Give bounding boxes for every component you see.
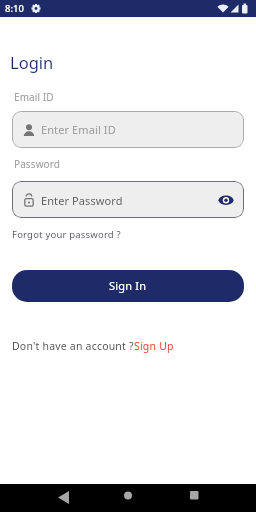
button[interactable]: Enter Email ID — [12, 111, 244, 148]
button[interactable]: Forgot your password ? — [12, 228, 121, 241]
staticText: Enter Email ID — [41, 122, 116, 137]
staticText: Enter Password — [41, 193, 123, 208]
button[interactable] — [50, 485, 76, 509]
button[interactable]: Sign In — [12, 270, 244, 302]
staticText: 8:10 — [5, 2, 24, 15]
button[interactable] — [115, 485, 141, 509]
button[interactable]: Sign Up — [134, 339, 174, 353]
button[interactable] — [181, 485, 207, 509]
staticText: Sign In — [109, 278, 147, 293]
staticText: Don't have an account ? — [12, 339, 134, 353]
button[interactable]: Enter Password — [12, 181, 244, 218]
staticText: Email ID — [14, 90, 54, 104]
staticText: Login — [10, 51, 54, 73]
staticText: Password — [14, 157, 61, 171]
